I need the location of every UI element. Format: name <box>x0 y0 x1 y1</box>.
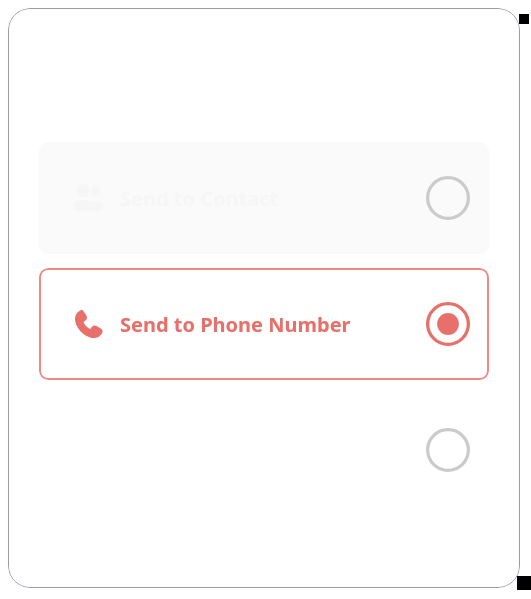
button[interactable]: Third option <box>39 394 489 506</box>
staticText: Send to Phone Number <box>120 311 351 338</box>
button[interactable]: Send to Phone Number <box>39 268 489 380</box>
button[interactable]: Send to Contact <box>39 142 489 254</box>
